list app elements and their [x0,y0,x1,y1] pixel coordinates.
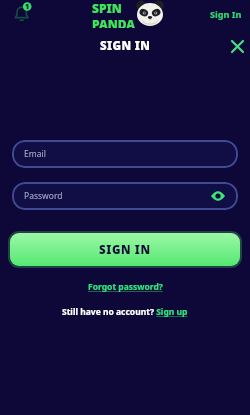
button[interactable]: Still have no account? Sign up [62,306,188,318]
button[interactable]: SIGN IN [10,233,240,266]
staticText: Email [24,148,46,160]
staticText: SIGN IN [100,38,151,54]
button[interactable]: Sign In [210,8,242,20]
staticText: PANDA [92,16,135,28]
button[interactable]: Password [12,182,238,210]
staticText: SIGN IN [99,242,151,258]
button[interactable]: Forgot password? [88,281,163,293]
button[interactable] [12,1,36,25]
button[interactable] [228,37,246,55]
staticText: Password [24,190,63,202]
button[interactable]: Email [12,140,238,168]
staticText: SPIN [92,0,122,16]
